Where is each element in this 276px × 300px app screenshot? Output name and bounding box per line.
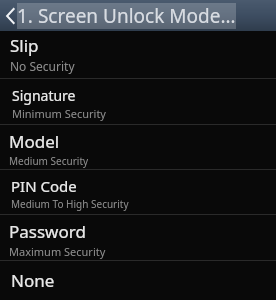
staticText: Medium Security bbox=[9, 154, 89, 168]
button[interactable]: Back bbox=[3, 0, 17, 31]
staticText: None bbox=[11, 269, 55, 292]
staticText: Model bbox=[9, 130, 60, 153]
staticText: Slip bbox=[10, 34, 39, 57]
staticText: 1. Screen Unlock Mode… bbox=[17, 3, 236, 29]
button[interactable]: Password bbox=[0, 215, 276, 260]
button[interactable]: Model bbox=[0, 125, 276, 169]
staticText: Password bbox=[9, 220, 86, 243]
button[interactable]: None bbox=[0, 261, 276, 300]
staticText: Maximum Security bbox=[9, 244, 106, 259]
staticText: PIN Code bbox=[11, 176, 77, 196]
button[interactable]: Signature bbox=[0, 79, 276, 124]
staticText: Signature bbox=[12, 86, 76, 105]
button[interactable]: PIN Code bbox=[0, 170, 276, 214]
button[interactable]: Slip bbox=[0, 31, 276, 78]
staticText: Medium To High Security bbox=[11, 197, 129, 211]
staticText: Minimum Security bbox=[12, 106, 106, 121]
staticText: No Security bbox=[10, 58, 75, 74]
button[interactable]: 1. Screen Unlock Mode… bbox=[17, 3, 236, 29]
